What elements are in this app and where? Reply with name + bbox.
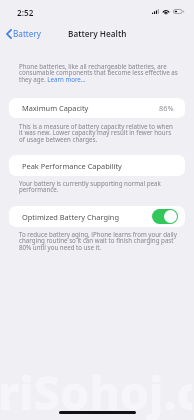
button[interactable]: Maximum Capacity — [9, 98, 185, 118]
staticText: Phone batteries, like all rechargeable b… — [19, 62, 182, 84]
staticText: riSohoj.c — [0, 360, 192, 420]
staticText: 2:52 — [17, 7, 34, 18]
staticText: This is a measure of battery capacity re… — [19, 122, 177, 144]
staticText: To reduce battery aging, iPhone learns f… — [19, 230, 177, 252]
staticText: Peak Performance Capability — [22, 161, 122, 171]
button[interactable]: Optimized Battery Charging toggle, on — [152, 209, 178, 224]
staticText: Your battery is currently supporting nor… — [19, 179, 177, 194]
staticText: Maximum Capacity — [22, 103, 89, 113]
staticText: Optimized Battery Charging — [22, 212, 119, 222]
button[interactable]: Battery — [3, 26, 47, 41]
staticText: Battery — [13, 28, 42, 39]
button[interactable]: Optimized Battery Charging — [9, 206, 185, 227]
staticText: 86% — [159, 103, 174, 113]
staticText: Battery Health — [68, 28, 127, 39]
button[interactable]: Peak Performance Capability — [9, 155, 185, 176]
